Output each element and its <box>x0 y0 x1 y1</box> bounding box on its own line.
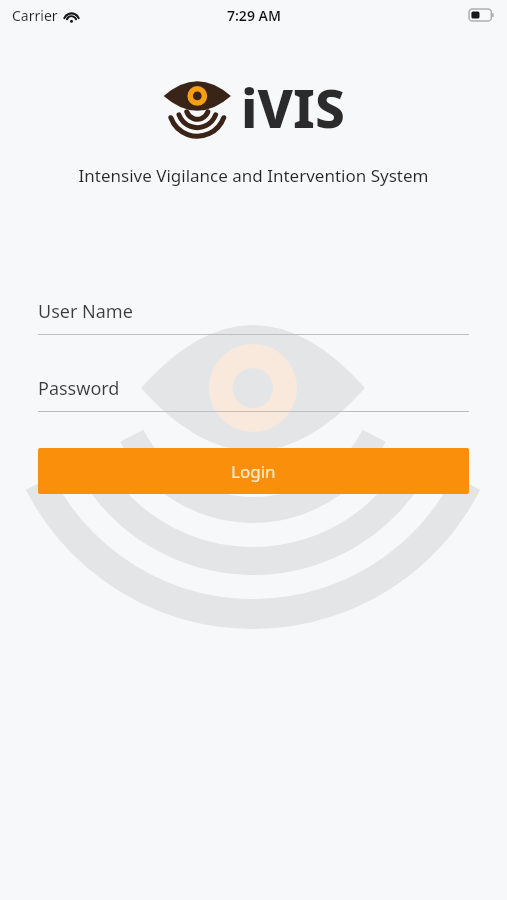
staticText: iVIS <box>241 71 345 143</box>
button[interactable]: User Name <box>38 299 469 335</box>
staticText: User Name <box>38 299 133 324</box>
staticText: 7:29 AM <box>227 6 281 25</box>
other: Battery <box>469 9 495 21</box>
button[interactable]: Password <box>38 376 469 412</box>
staticText: Password <box>38 376 120 401</box>
staticText: Intensive Vigilance and Intervention Sys… <box>0 164 507 187</box>
staticText: Login <box>231 460 276 483</box>
other: Wi-Fi signal <box>64 10 79 22</box>
staticText: Carrier <box>12 6 58 25</box>
button[interactable]: Login <box>38 448 469 494</box>
